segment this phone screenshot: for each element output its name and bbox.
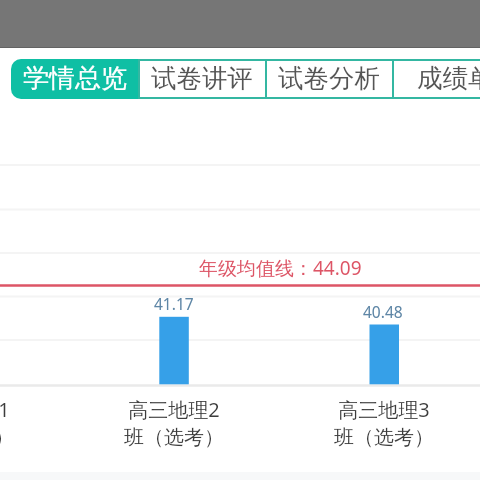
staticText: 高三地理2: [128, 396, 220, 423]
staticText: 41.17: [154, 293, 194, 314]
staticText: 班（选考）: [0, 425, 14, 450]
staticText: 成绩单: [417, 62, 480, 94]
button[interactable]: 成绩单: [392, 59, 480, 99]
staticText: 试卷分析: [278, 62, 380, 94]
staticText: 40.48: [363, 301, 403, 322]
button[interactable]: 试卷分析: [265, 59, 392, 99]
staticText: 班（选考）: [124, 425, 224, 450]
staticText: 试卷讲评: [151, 62, 253, 94]
staticText: 高三地理3: [338, 396, 430, 423]
staticText: 班（选考）: [334, 425, 434, 450]
staticText: 年级均值线：44.09: [199, 255, 362, 281]
button[interactable]: 学情总览: [11, 59, 138, 99]
staticText: 学情总览: [23, 62, 127, 95]
button[interactable]: 试卷讲评: [138, 59, 265, 99]
staticText: 高三地理1: [0, 396, 10, 423]
